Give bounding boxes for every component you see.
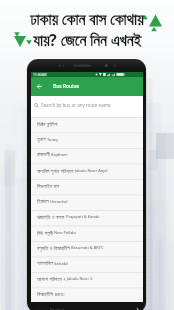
button[interactable]: মিডলাইন বাস	[31, 179, 143, 195]
staticText: ঢাকায় কোন বাস কোথায়	[30, 8, 144, 29]
staticText: Prajapati & Kanak	[66, 214, 100, 219]
staticText: Search by bus or any route name	[41, 102, 111, 108]
staticText: সালসাবিল	[37, 261, 53, 266]
staticText: বিআরটিসি	[37, 292, 54, 297]
staticText: যায়? জেনে নিন এখনই	[33, 29, 142, 50]
button[interactable]: প্রজাপতি ও কনক	[31, 210, 143, 226]
button[interactable]: সালসাবিল	[31, 257, 143, 273]
staticText: 11:50AM	[33, 72, 47, 76]
staticText: Jabalu Noor Anjal	[75, 168, 108, 173]
button[interactable]: নিউ পল্লবী	[31, 226, 143, 242]
button[interactable]: Back	[31, 77, 47, 96]
staticText: রাজধানী	[37, 152, 50, 157]
staticText: হিমাচল	[37, 199, 49, 204]
staticText: অনাবিল সুপার পরিবহন	[37, 167, 74, 174]
staticText: BRTC	[55, 292, 65, 297]
staticText: ভিক্টর ক্লাসিক	[37, 120, 58, 127]
staticText: মিডলাইন বাস	[37, 182, 60, 189]
staticText: Turag	[47, 137, 58, 142]
staticText: আকাশ পরিবহন ২	[37, 275, 66, 282]
button[interactable]: ভিক্টর ক্লাসিক	[31, 117, 143, 133]
button[interactable]: Search by bus or any route name	[31, 96, 143, 117]
staticText: Jabalu Noor 2	[67, 276, 93, 281]
button[interactable]: বিআরটিসি	[31, 288, 143, 304]
staticText: Bus Routes	[53, 83, 80, 90]
staticText: তুরাগ	[37, 137, 46, 142]
staticText: বসুমতি ও বিআরটিসি	[37, 244, 70, 251]
staticText: Himachal	[50, 199, 68, 204]
button[interactable]: রাজধানী	[31, 148, 143, 164]
staticText: New Pallabi	[54, 230, 76, 235]
button[interactable]: গুলশান	[31, 303, 143, 310]
staticText: Gunnot	[50, 307, 65, 310]
staticText: প্রজাপতি ও কনক	[37, 213, 65, 220]
staticText: Salsabil	[54, 261, 69, 266]
staticText: Rajdhani	[51, 152, 68, 157]
staticText: নিউ পল্লবী	[37, 229, 53, 236]
staticText: Basumati & BRTC	[71, 245, 104, 250]
button[interactable]: হিমাচল	[31, 195, 143, 211]
button[interactable]: আকাশ পরিবহন ২	[31, 272, 143, 288]
button[interactable]: তুরাগ	[31, 133, 143, 149]
button[interactable]: বসুমতি ও বিআরটিসি	[31, 241, 143, 257]
button[interactable]: অনাবিল সুপার পরিবহন	[31, 164, 143, 180]
